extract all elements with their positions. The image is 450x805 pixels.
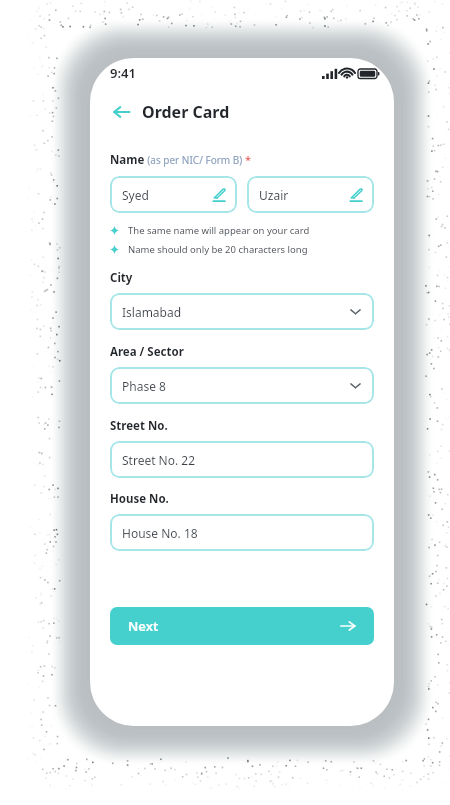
button[interactable]: House No. 18: [110, 514, 374, 551]
staticText: Area / Sector: [110, 344, 184, 360]
staticText: Uzair: [259, 187, 289, 203]
staticText: Name should only be 20 characters long: [128, 243, 308, 256]
staticText: Syed: [122, 187, 149, 203]
staticText: The same name will appear on your card: [128, 224, 310, 237]
staticText: Street No.: [110, 418, 168, 434]
staticText: 9:41: [110, 64, 136, 82]
staticText: Name (as per NIC/ Form B) *: [110, 152, 251, 168]
staticText: Next: [128, 617, 159, 635]
button[interactable]: Uzair: [247, 176, 374, 213]
staticText: Order Card: [142, 101, 230, 123]
button[interactable]: Phase 8: [110, 367, 374, 404]
staticText: Phase 8: [122, 378, 166, 394]
staticText: House No.: [110, 491, 169, 507]
staticText: House No. 18: [122, 525, 198, 541]
button[interactable]: Next: [110, 607, 374, 645]
button[interactable]: Back: [108, 99, 134, 125]
staticText: Street No. 22: [122, 452, 196, 468]
button[interactable]: Street No. 22: [110, 441, 374, 478]
button[interactable]: Islamabad: [110, 293, 374, 330]
staticText: City: [110, 270, 133, 286]
staticText: Islamabad: [122, 304, 182, 320]
button[interactable]: Syed: [110, 176, 237, 213]
